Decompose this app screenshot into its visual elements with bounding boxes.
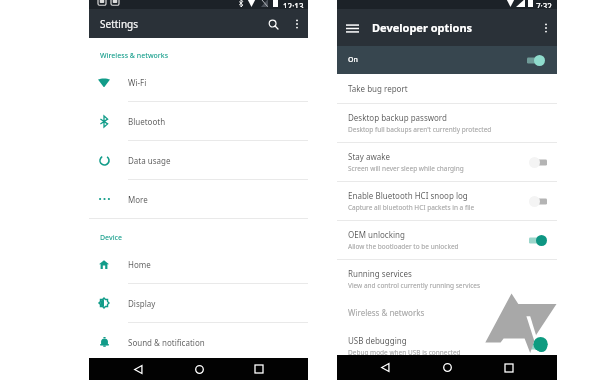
button[interactable]: OEM unlocking — [337, 221, 557, 259]
staticText: Wi-Fi — [128, 77, 147, 88]
button[interactable]: Home — [435, 355, 460, 380]
staticText: Device — [100, 233, 123, 243]
button[interactable]: More — [89, 180, 308, 218]
staticText: Screen will never sleep while charging — [348, 164, 464, 173]
staticText: Debug mode when USB is connected — [348, 348, 461, 357]
staticText: Data usage — [128, 155, 171, 166]
staticText: View and control currently running servi… — [348, 281, 481, 290]
staticText: Desktop backup password — [348, 112, 447, 123]
button[interactable]: Recent apps — [496, 355, 521, 380]
button[interactable]: Wi-Fi — [89, 63, 308, 101]
staticText: Sound & notification — [128, 337, 205, 348]
button[interactable]: Display — [89, 284, 308, 322]
staticText: Settings — [100, 17, 260, 31]
staticText: Home — [128, 259, 151, 270]
staticText: Take bug report — [348, 83, 408, 94]
staticText: Wireless & networks — [348, 307, 425, 318]
button[interactable]: Stay awake — [337, 143, 557, 181]
staticText: Desktop full backups aren't currently pr… — [348, 125, 492, 134]
staticText: More — [128, 194, 148, 205]
button[interactable]: Navigation menu — [337, 13, 368, 43]
staticText: Enable Bluetooth HCI snoop log — [348, 190, 468, 201]
button[interactable]: On — [337, 46, 557, 74]
button[interactable]: Bluetooth — [89, 102, 308, 140]
button[interactable]: Home — [89, 245, 308, 283]
button[interactable]: Home — [188, 358, 210, 380]
button[interactable]: Search — [260, 11, 286, 37]
staticText: Allow the bootloader to be unlocked — [348, 242, 459, 251]
button[interactable]: Enable Bluetooth HCI snoop log — [337, 182, 557, 220]
button[interactable]: Back — [373, 355, 398, 380]
button[interactable]: Recent apps — [248, 358, 270, 380]
button[interactable]: USB debugging — [337, 327, 557, 365]
staticText: On — [348, 55, 527, 65]
button[interactable]: More options — [535, 15, 557, 41]
button[interactable]: Take bug report — [337, 74, 557, 103]
staticText: 12:13 — [283, 1, 304, 8]
staticText: Bluetooth — [128, 116, 166, 127]
staticText: Stay awake — [348, 151, 390, 162]
staticText: OEM unlocking — [348, 229, 405, 240]
button[interactable]: Home — [435, 355, 460, 380]
staticText: Running services — [348, 268, 412, 279]
staticText: Wireless & networks — [100, 51, 169, 61]
button[interactable]: Running services — [337, 260, 557, 298]
staticText: 7:32 — [536, 1, 552, 8]
button[interactable]: More options — [286, 11, 308, 37]
button[interactable]: Back — [373, 355, 398, 380]
button[interactable]: Sound & notification — [89, 323, 308, 361]
button[interactable]: Back — [127, 358, 149, 380]
button[interactable]: Recent apps — [496, 355, 521, 380]
staticText: Developer options — [372, 20, 535, 35]
staticText: Display — [128, 298, 156, 309]
button[interactable]: Desktop backup password — [337, 104, 557, 142]
staticText: USB debugging — [348, 335, 407, 346]
button[interactable]: Data usage — [89, 141, 308, 179]
staticText: Capture all bluetooth HCI packets in a f… — [348, 203, 475, 212]
